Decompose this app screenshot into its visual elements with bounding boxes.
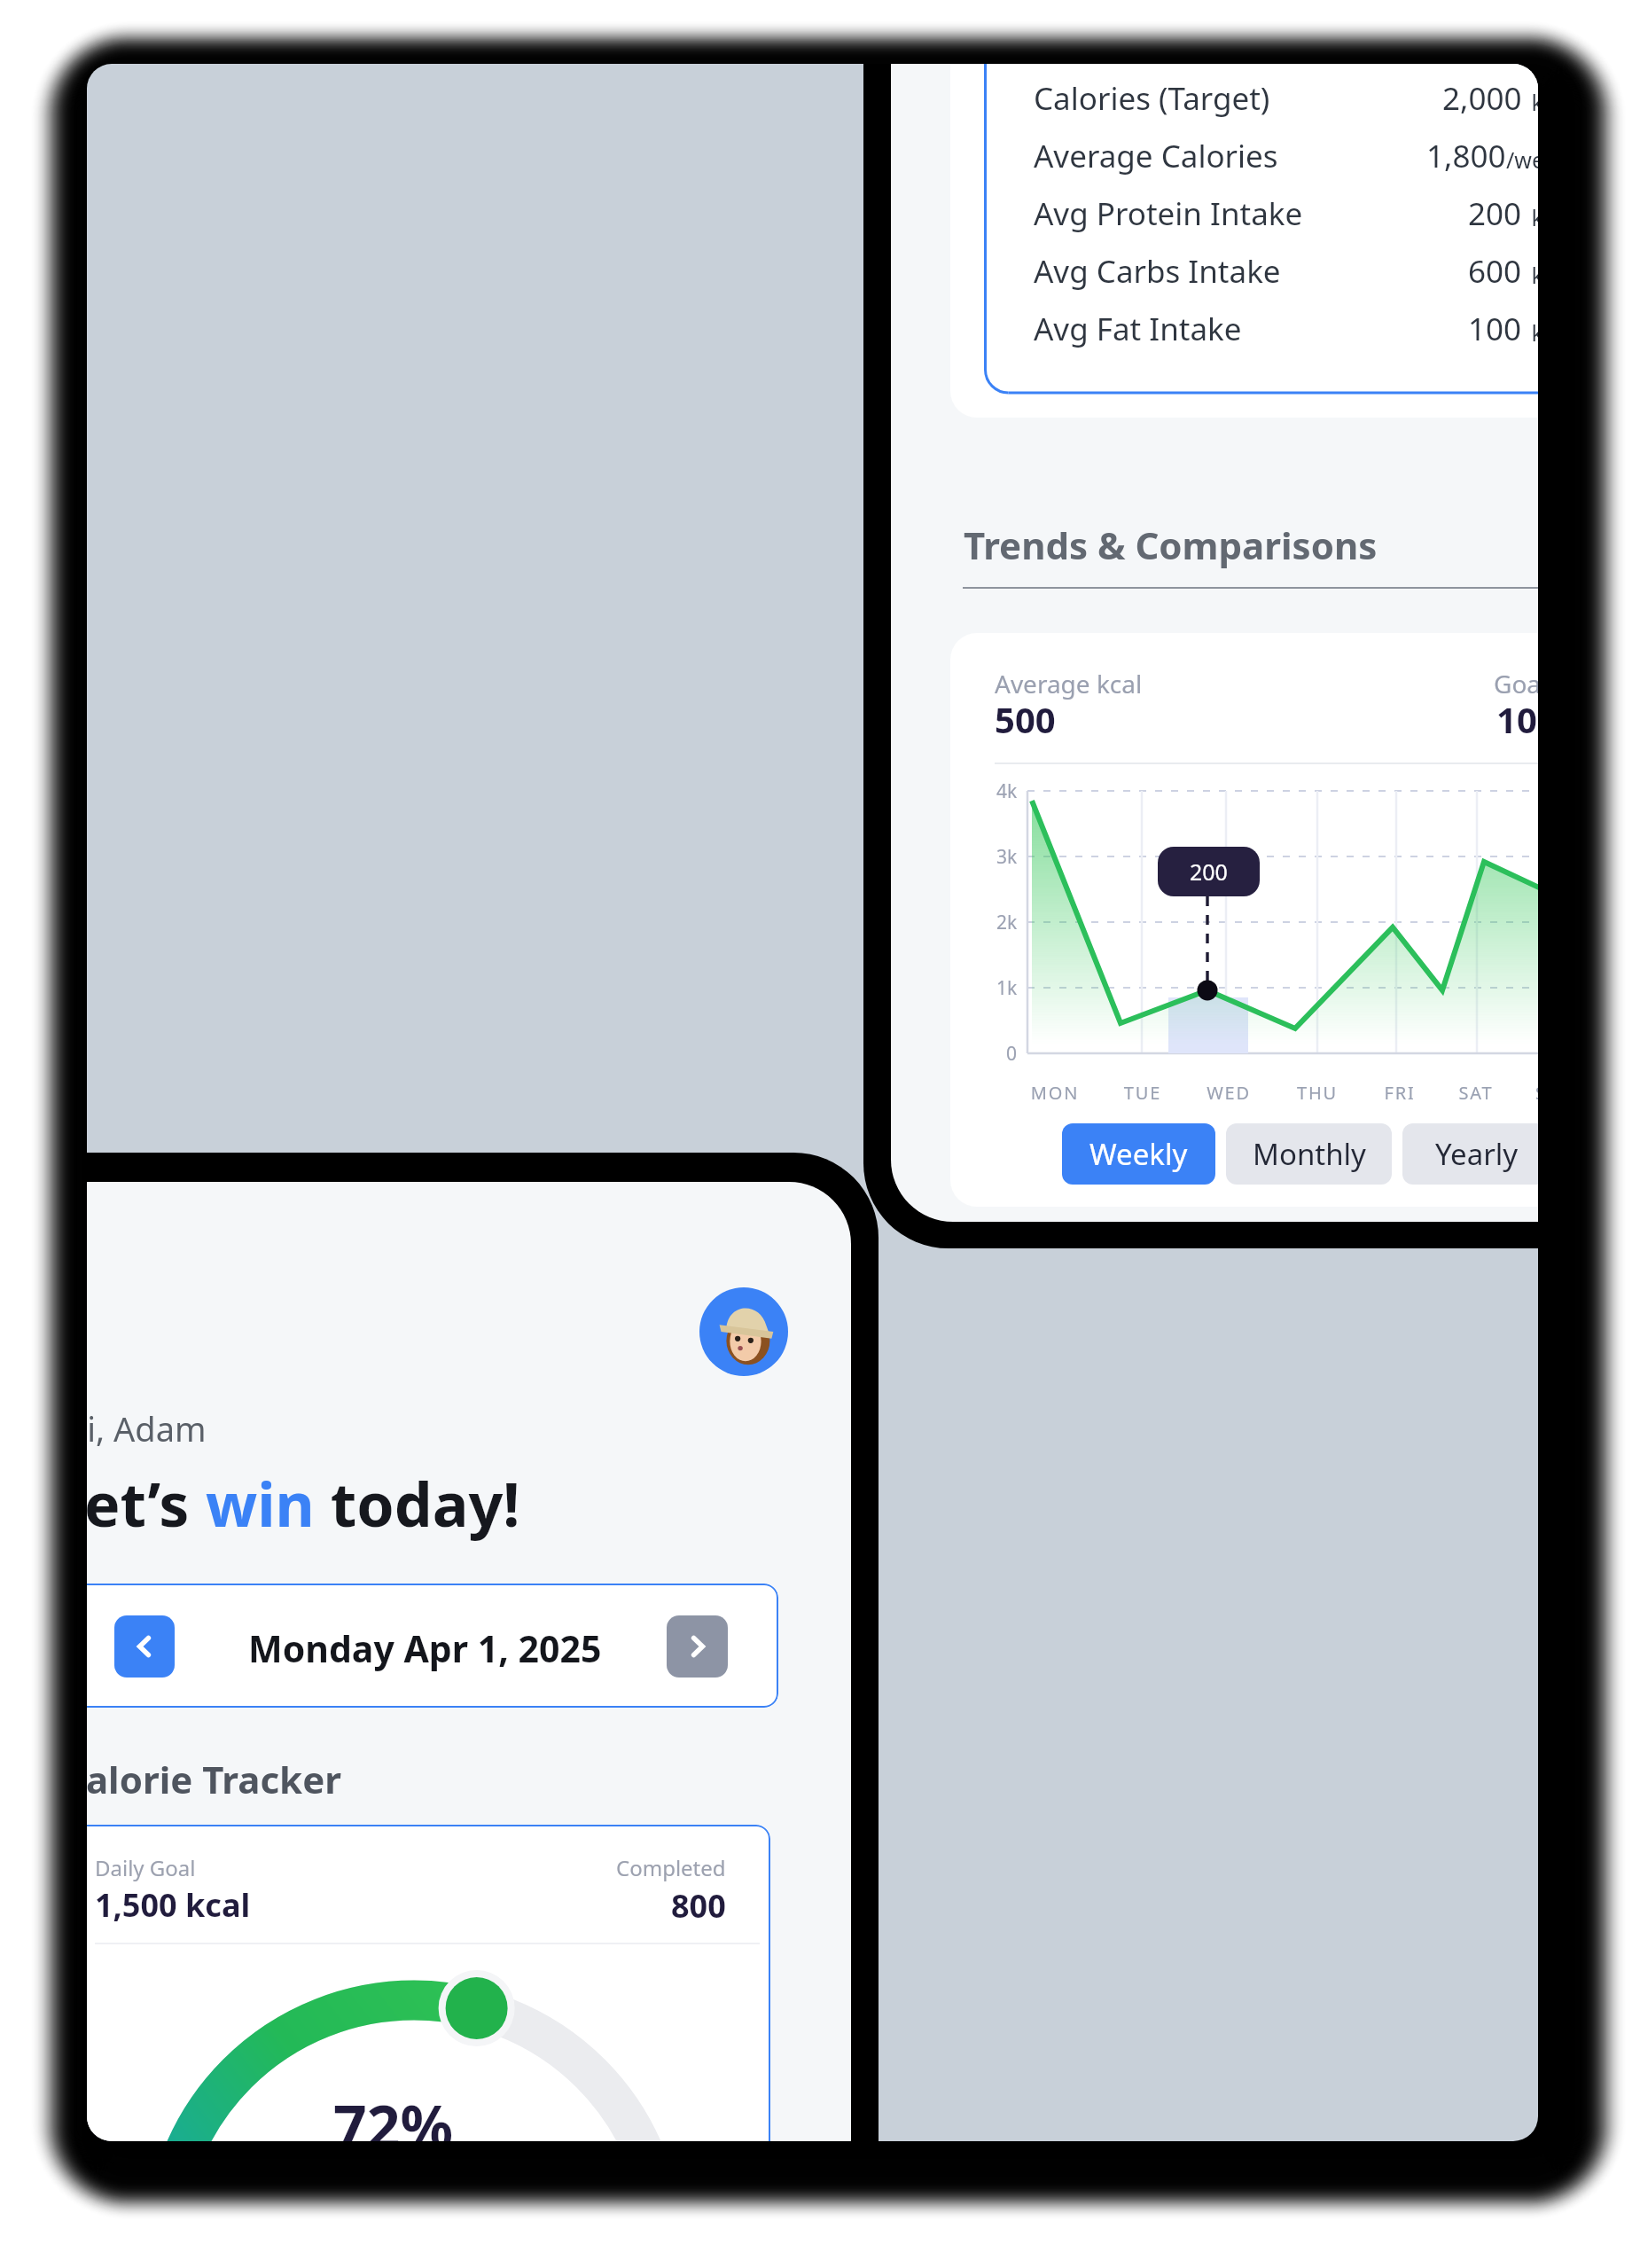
staticText: MON	[1002, 1081, 1108, 1105]
staticText: kcal	[1526, 87, 1573, 117]
staticText: Avg Carbs Intake	[1034, 250, 1281, 293]
staticText: Monday Apr 1, 2025	[248, 1623, 602, 1673]
staticText: 600	[1468, 250, 1522, 293]
staticText: win	[206, 1462, 315, 1545]
button[interactable]: Avg Fat Intake	[1034, 301, 1569, 356]
button[interactable]: Next day	[667, 1615, 728, 1678]
staticText: Hi, Adam	[62, 1405, 207, 1451]
button[interactable]: Weekly	[1062, 1123, 1215, 1185]
staticText: 1000	[1496, 695, 1578, 743]
staticText: Avg Fat Intake	[1034, 308, 1242, 350]
staticText: kcal	[1526, 317, 1573, 348]
staticText: Monthly	[1253, 1134, 1366, 1174]
staticText: 500	[995, 695, 1056, 743]
staticText: 200	[1468, 192, 1522, 235]
staticText: 72%	[333, 2085, 454, 2165]
staticText: Daily Goal	[95, 1853, 196, 1882]
staticText: SAT	[1423, 1081, 1529, 1105]
staticText: FRI	[1347, 1081, 1453, 1105]
button[interactable]: Monthly	[1226, 1123, 1392, 1185]
staticText: Goal	[1494, 667, 1548, 700]
staticText: Yearly	[1435, 1134, 1519, 1174]
staticText: 1,500 kcal	[95, 1883, 251, 1927]
staticText: SUN	[1503, 1081, 1609, 1105]
staticText: /week	[1506, 145, 1569, 175]
staticText: Completed	[616, 1853, 726, 1882]
staticText: 1,800	[1426, 135, 1506, 177]
staticText: 2,000	[1442, 77, 1522, 120]
staticText: WED	[1175, 1081, 1282, 1105]
staticText: today!	[315, 1462, 520, 1545]
button[interactable]: Avg Protein Intake	[1034, 186, 1569, 241]
button[interactable]: Calories (Target)	[1034, 71, 1569, 126]
staticText: Weekly	[1089, 1134, 1188, 1174]
staticText: THU	[1264, 1081, 1371, 1105]
staticText: kcal	[1526, 202, 1573, 232]
button[interactable]: Yearly	[1402, 1123, 1551, 1185]
staticText: 2k	[996, 910, 1018, 935]
button[interactable]: Average Calories	[1034, 129, 1569, 184]
staticText: 800	[671, 1884, 726, 1928]
staticText: kcal	[1526, 260, 1573, 290]
staticText: Avg Protein Intake	[1034, 192, 1303, 235]
button[interactable]: Avg Carbs Intake	[1034, 244, 1569, 299]
staticText: Let’s	[51, 1462, 206, 1545]
button[interactable]: Previous day	[114, 1615, 175, 1678]
staticText: 100	[1468, 308, 1522, 350]
staticText: Average kcal	[995, 667, 1143, 700]
staticText: Average Calories	[1034, 135, 1278, 177]
staticText: 3k	[996, 844, 1018, 870]
staticText: 4k	[996, 778, 1018, 804]
button[interactable]: Profile	[699, 1287, 788, 1376]
staticText: Calorie Tracker	[62, 1754, 342, 1804]
staticText: Calories (Target)	[1034, 77, 1270, 120]
staticText: Trends & Comparisons	[964, 520, 1378, 570]
staticText: 200	[1190, 856, 1228, 887]
staticText: TUE	[1089, 1081, 1196, 1105]
staticText: 0	[1006, 1041, 1018, 1067]
staticText: 1k	[996, 975, 1018, 1001]
